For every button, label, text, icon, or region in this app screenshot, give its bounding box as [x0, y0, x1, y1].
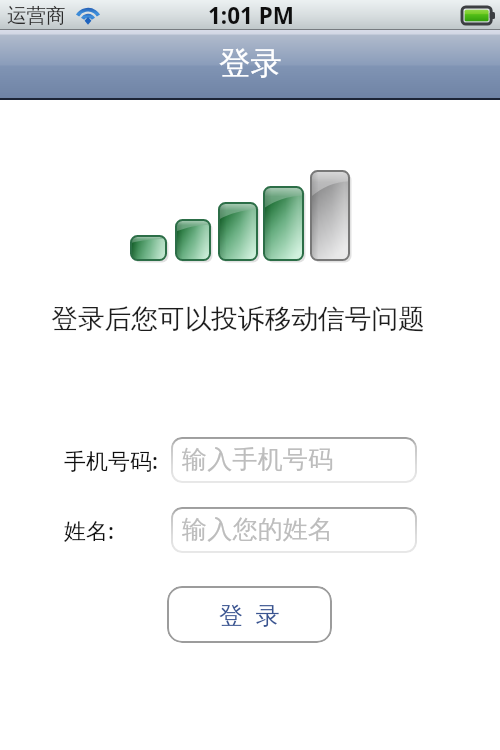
staticText: 1:01 PM	[208, 0, 294, 30]
other: Wi-Fi signal	[74, 5, 102, 25]
button[interactable]: 登 录	[167, 586, 332, 643]
staticText: 输入手机号码	[182, 444, 334, 476]
other: Battery full	[462, 7, 495, 24]
staticText: 登 录	[219, 598, 280, 631]
button[interactable]: 输入您的姓名	[171, 507, 417, 553]
staticText: 输入您的姓名	[182, 514, 334, 546]
button[interactable]: 输入手机号码	[171, 437, 417, 483]
staticText: 登录	[219, 44, 282, 84]
staticText: 手机号码:	[64, 445, 158, 475]
staticText: 登录后您可以投诉移动信号问题	[0, 302, 488, 336]
staticText: 运营商	[7, 3, 66, 28]
staticText: 姓名:	[64, 515, 114, 545]
